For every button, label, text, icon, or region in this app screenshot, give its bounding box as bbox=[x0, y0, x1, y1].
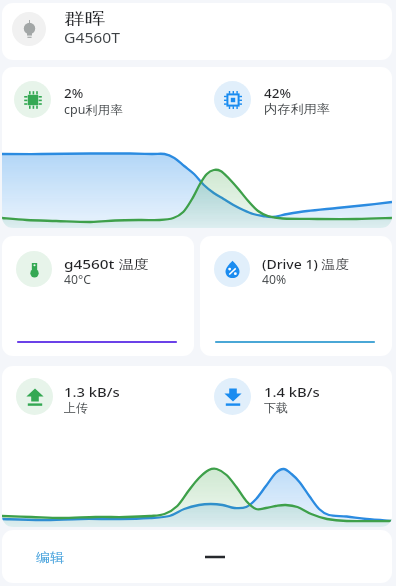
button[interactable] bbox=[14, 81, 51, 118]
staticText: 上传 bbox=[64, 400, 88, 415]
staticText: 40% bbox=[262, 271, 286, 287]
button[interactable]: 群晖 bbox=[2, 3, 392, 60]
staticText: 1.3 kB/s bbox=[64, 383, 120, 401]
staticText: 2% bbox=[64, 84, 84, 102]
staticText: 群晖 bbox=[64, 9, 106, 29]
staticText: 1.4 kB/s bbox=[264, 383, 320, 401]
staticText: 内存利用率 bbox=[264, 101, 330, 116]
button[interactable] bbox=[16, 378, 53, 415]
staticText: G4560T bbox=[64, 28, 121, 47]
button[interactable]: g4560t 温度 bbox=[2, 236, 194, 356]
button[interactable] bbox=[214, 81, 251, 118]
staticText: g4560t 温度 bbox=[64, 255, 150, 273]
staticText: cpu利用率 bbox=[64, 101, 123, 117]
button[interactable]: (Drive 1) 温度 bbox=[200, 236, 392, 356]
staticText: 下载 bbox=[264, 400, 288, 415]
button[interactable]: 编辑 bbox=[12, 530, 88, 583]
staticText: (Drive 1) 温度 bbox=[262, 255, 351, 273]
staticText: 42% bbox=[264, 84, 291, 102]
staticText: 40°C bbox=[64, 271, 91, 287]
button[interactable]: Collapse bbox=[162, 530, 268, 583]
staticText: 编辑 bbox=[36, 549, 64, 565]
button[interactable] bbox=[214, 378, 251, 415]
